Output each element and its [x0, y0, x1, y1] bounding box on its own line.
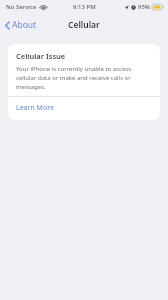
other: Back to About [5, 21, 10, 30]
button[interactable]: Learn More [8, 97, 160, 120]
button[interactable]: Back to About [0, 15, 43, 35]
staticText: No Service [6, 3, 37, 11]
staticText: 9:13 PM [73, 3, 96, 11]
staticText: About [12, 19, 37, 31]
staticText: Your iPhone is currently unable to acces… [16, 65, 152, 90]
staticText: Cellular Issue [16, 51, 66, 61]
staticText: Cellular [68, 19, 100, 31]
staticText: 95% [138, 3, 150, 11]
staticText: Learn More [16, 103, 54, 113]
